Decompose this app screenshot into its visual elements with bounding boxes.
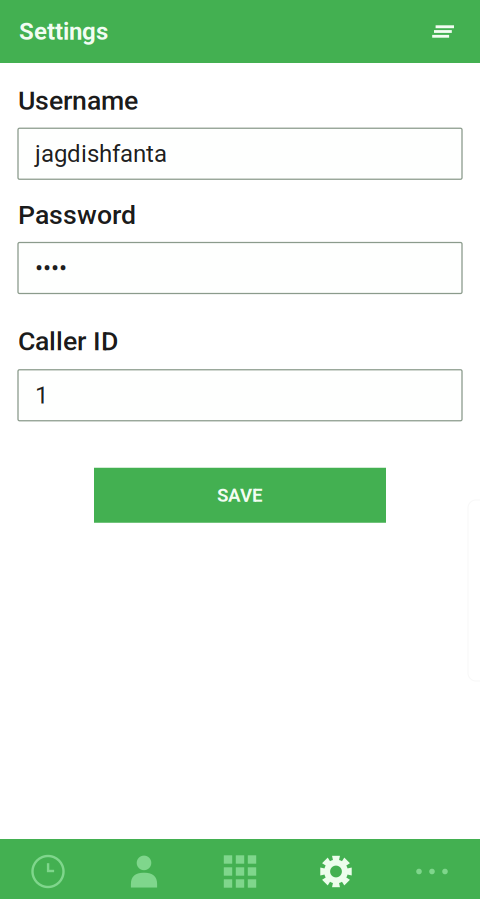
button[interactable]: SAVE	[94, 468, 386, 523]
button[interactable]: More	[384, 839, 480, 899]
staticText: SAVE	[217, 484, 263, 506]
staticText: Settings	[19, 17, 108, 45]
staticText: Password	[18, 199, 136, 231]
staticText: 1	[35, 381, 48, 409]
button[interactable]: Menu	[432, 25, 454, 38]
button[interactable]: Settings	[288, 839, 384, 899]
staticText: Caller ID	[18, 325, 118, 357]
button[interactable]: Contacts	[96, 839, 192, 899]
staticText: Username	[18, 85, 138, 116]
staticText: ••••	[35, 254, 67, 282]
button[interactable]: Recents	[0, 839, 96, 899]
button[interactable]: Keypad	[192, 839, 288, 899]
button[interactable]: 1	[18, 370, 462, 421]
button[interactable]: jagdishfanta	[18, 128, 462, 179]
button[interactable]: ••••	[18, 242, 462, 293]
staticText: jagdishfanta	[35, 140, 167, 168]
